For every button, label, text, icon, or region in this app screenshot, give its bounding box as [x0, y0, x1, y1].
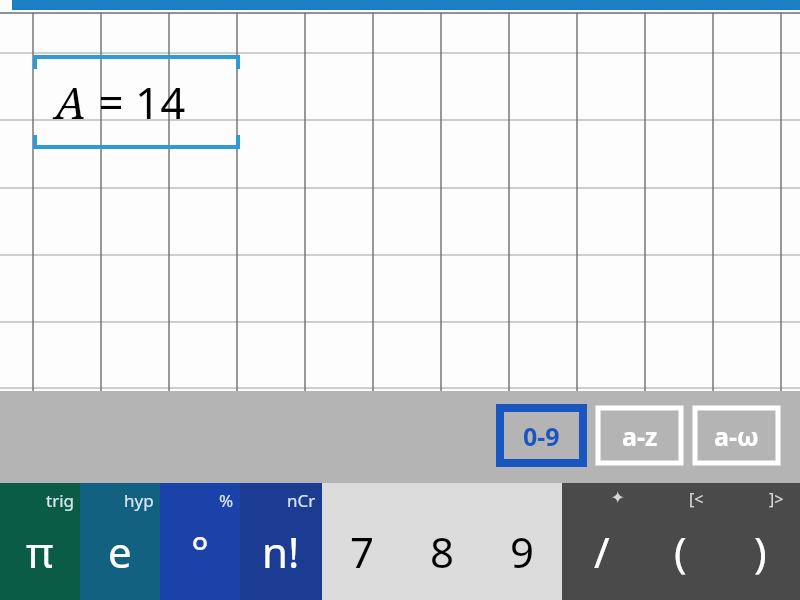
- button[interactable]: %: [160, 483, 240, 600]
- button[interactable]: a-z: [598, 408, 681, 463]
- button[interactable]: a-ω: [695, 408, 778, 463]
- staticText: = 14: [87, 72, 186, 132]
- staticText: trig: [46, 489, 74, 512]
- staticText: (: [674, 523, 687, 580]
- staticText: a-ω: [714, 419, 759, 453]
- staticText: 9: [510, 523, 535, 580]
- button[interactable]: [<: [641, 483, 720, 600]
- button[interactable]: trig: [0, 483, 80, 600]
- staticText: 7: [350, 523, 375, 580]
- staticText: 0-9: [523, 419, 560, 453]
- button[interactable]: ]>: [720, 483, 800, 600]
- staticText: e: [108, 523, 132, 580]
- staticText: π: [26, 523, 54, 580]
- staticText: 8: [430, 523, 455, 580]
- button[interactable]: hyp: [80, 483, 160, 600]
- staticText: hyp: [124, 489, 154, 512]
- staticText: ): [754, 523, 767, 580]
- staticText: a-z: [622, 419, 658, 453]
- staticText: A: [55, 72, 87, 132]
- staticText: %: [219, 489, 234, 512]
- staticText: /: [594, 523, 610, 580]
- staticText: ✦: [611, 488, 625, 507]
- staticText: nCr: [287, 489, 316, 512]
- button[interactable]: 7: [322, 483, 402, 600]
- staticText: ]>: [769, 488, 784, 510]
- button[interactable]: 9: [482, 483, 562, 600]
- button[interactable]: nCr: [240, 483, 322, 600]
- button[interactable]: ✦: [562, 483, 641, 600]
- staticText: °: [191, 523, 209, 580]
- staticText: n!: [262, 523, 300, 580]
- button[interactable]: A: [33, 55, 240, 149]
- button[interactable]: 0-9: [500, 408, 583, 463]
- button[interactable]: 8: [402, 483, 482, 600]
- staticText: [<: [689, 488, 704, 510]
